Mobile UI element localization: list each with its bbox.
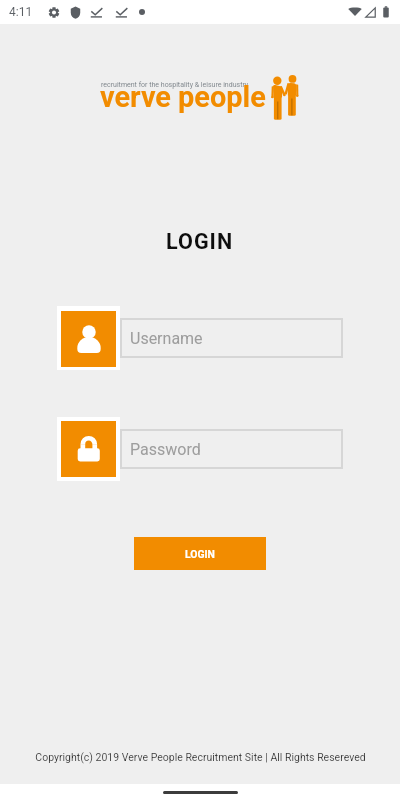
button[interactable]: Password xyxy=(61,421,116,477)
staticText: 4:11 xyxy=(9,5,33,19)
staticText: verve people xyxy=(100,80,266,114)
button[interactable]: Username xyxy=(61,311,116,367)
staticText: Password xyxy=(130,440,201,459)
staticText: LOGIN xyxy=(185,548,215,560)
button[interactable]: LOGIN xyxy=(134,537,266,570)
button[interactable]: Username xyxy=(120,318,343,358)
staticText: Copyright(c) 2019 Verve People Recruitme… xyxy=(35,751,366,763)
staticText: recruitment for the hospitality & leisur… xyxy=(101,81,249,89)
button[interactable]: Password xyxy=(120,429,343,469)
staticText: Username xyxy=(130,329,203,348)
staticText: LOGIN xyxy=(166,229,234,254)
